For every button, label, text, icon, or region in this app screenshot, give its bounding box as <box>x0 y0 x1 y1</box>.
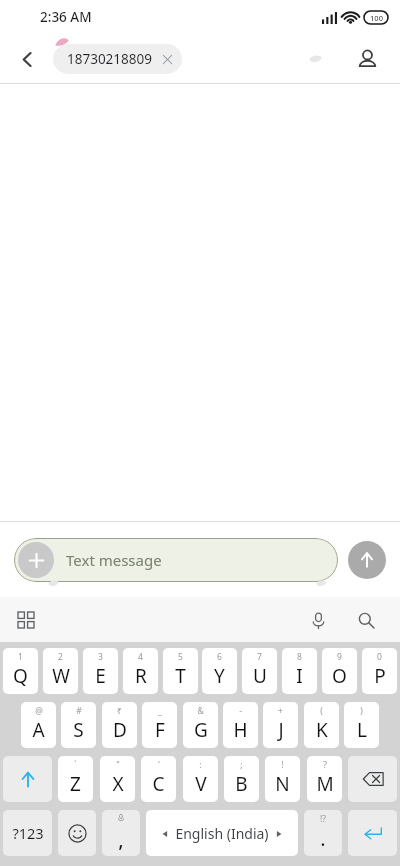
staticText: W <box>52 663 70 689</box>
staticText: @ <box>35 705 43 717</box>
button[interactable]: Voice input <box>300 602 336 638</box>
staticText: 100 <box>370 13 383 23</box>
staticText: Q <box>13 663 28 689</box>
button[interactable]: Attach <box>18 542 54 578</box>
button[interactable]: ( <box>304 702 339 748</box>
staticText: 7 <box>257 651 262 663</box>
staticText: M <box>316 771 334 797</box>
button[interactable]: , <box>102 810 140 856</box>
staticText: 18730218809 <box>67 50 152 68</box>
button[interactable]: & <box>183 702 218 748</box>
staticText: G <box>194 717 208 743</box>
button[interactable]: 4 <box>123 648 158 694</box>
staticText: : <box>199 759 202 771</box>
button[interactable]: Attach <box>14 538 338 582</box>
button[interactable]: 18730218809 <box>53 44 182 74</box>
staticText: T <box>175 663 186 689</box>
staticText: B <box>235 771 248 797</box>
button[interactable]: 0 <box>362 648 397 694</box>
staticText: C <box>152 771 165 797</box>
staticText: J <box>278 717 284 743</box>
staticText: English (India) <box>175 824 269 843</box>
button[interactable]: : <box>183 756 218 802</box>
button[interactable]: Send <box>348 541 386 579</box>
button[interactable]: Backspace <box>348 756 397 802</box>
staticText: R <box>135 663 147 689</box>
staticText: 9 <box>337 651 342 663</box>
button[interactable]: ! <box>265 756 300 802</box>
staticText: - <box>239 705 242 717</box>
staticText: N <box>275 771 290 797</box>
staticText: ( <box>320 705 323 717</box>
button[interactable]: 8 <box>282 648 317 694</box>
staticText: L <box>357 717 367 743</box>
staticText: 3 <box>98 651 103 663</box>
button[interactable]: ; <box>224 756 259 802</box>
button[interactable]: English (India) <box>146 810 298 856</box>
staticText: & <box>197 705 204 717</box>
button[interactable]: Shift <box>3 756 52 802</box>
button[interactable]: ₹ <box>102 702 137 748</box>
staticText: !? <box>320 813 326 825</box>
button[interactable]: # <box>61 702 96 748</box>
staticText: Text message <box>66 550 162 570</box>
staticText: S <box>73 717 84 743</box>
staticText: _ <box>158 705 162 717</box>
staticText: , <box>118 826 124 853</box>
staticText: ! <box>281 759 284 771</box>
staticText: X <box>112 771 124 797</box>
button[interactable]: 9 <box>322 648 357 694</box>
button[interactable]: " <box>100 756 135 802</box>
button[interactable]: + <box>263 702 298 748</box>
button[interactable]: 6 <box>202 648 237 694</box>
staticText: ` <box>74 759 77 771</box>
staticText: 2 <box>58 651 63 663</box>
staticText: O <box>332 663 347 689</box>
button[interactable]: _ <box>142 702 177 748</box>
staticText: ' <box>158 759 160 771</box>
button[interactable]: 7 <box>242 648 277 694</box>
button[interactable]: Back <box>10 42 44 76</box>
button[interactable]: 3 <box>83 648 118 694</box>
button[interactable]: !? <box>304 810 342 856</box>
button[interactable]: Contact details <box>348 40 386 78</box>
staticText: 5 <box>178 651 183 663</box>
staticText: V <box>195 771 207 797</box>
button[interactable]: @ <box>21 702 56 748</box>
staticText: 8 <box>297 651 302 663</box>
staticText: 1 <box>18 651 23 663</box>
staticText: ? <box>323 759 327 771</box>
staticText: 4 <box>138 651 143 663</box>
button[interactable]: - <box>223 702 258 748</box>
button[interactable]: 1 <box>3 648 38 694</box>
button[interactable]: ?123 <box>3 810 52 856</box>
button[interactable]: Emoji <box>58 810 96 856</box>
button[interactable]: ` <box>58 756 93 802</box>
button[interactable]: ' <box>141 756 176 802</box>
button[interactable]: ) <box>344 702 379 748</box>
button[interactable]: Enter <box>348 810 397 856</box>
staticText: F <box>155 717 165 743</box>
staticText: # <box>76 705 82 717</box>
button[interactable]: Keyboard options <box>8 602 44 638</box>
staticText: P <box>374 663 386 689</box>
button[interactable]: ? <box>307 756 342 802</box>
button[interactable]: Search <box>348 602 384 638</box>
staticText: D <box>113 717 127 743</box>
staticText: K <box>316 717 328 743</box>
staticText: + <box>278 705 283 717</box>
staticText: 0 <box>377 651 382 663</box>
staticText: H <box>233 717 248 743</box>
button[interactable]: 5 <box>163 648 198 694</box>
button[interactable]: 2 <box>43 648 78 694</box>
staticText: " <box>116 759 120 771</box>
staticText: 6 <box>217 651 222 663</box>
staticText: Y <box>214 663 225 689</box>
staticText: ?123 <box>12 823 44 843</box>
staticText: ; <box>240 759 243 771</box>
staticText: A <box>32 717 45 743</box>
staticText: U <box>253 663 267 689</box>
staticText: 2:36 AM <box>40 8 92 26</box>
staticText: I <box>296 663 303 689</box>
staticText: E <box>95 663 106 689</box>
